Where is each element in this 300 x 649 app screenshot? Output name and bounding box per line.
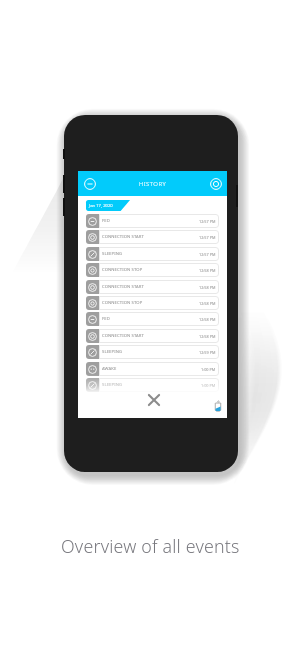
staticText: HISTORY: [139, 180, 167, 188]
button[interactable]: CONNECTION START: [86, 280, 219, 294]
staticText: 12:57 PM: [199, 219, 216, 224]
staticText: 1:00 PM: [201, 367, 216, 372]
button[interactable]: SLEEPING: [86, 378, 219, 392]
staticText: 12:58 PM: [199, 268, 216, 273]
staticText: CONNECTION START: [102, 333, 145, 339]
staticText: 12:58 PM: [199, 285, 216, 290]
staticText: FED: [102, 316, 110, 322]
button[interactable]: FED: [86, 312, 219, 326]
button[interactable]: AWAKE: [86, 362, 219, 376]
button[interactable]: Close: [143, 389, 165, 411]
staticText: Jan 17, 2020: [89, 203, 113, 209]
button[interactable]: CONNECTION STOP: [86, 296, 219, 310]
staticText: SLEEPING: [102, 251, 123, 257]
button[interactable]: FED: [86, 214, 219, 228]
staticText: SLEEPING: [102, 349, 123, 355]
staticText: 1:00 PM: [201, 383, 216, 388]
button[interactable]: Back: [82, 176, 98, 192]
staticText: CONNECTION STOP: [102, 300, 143, 306]
staticText: 12:57 PM: [199, 235, 216, 240]
staticText: FED: [102, 218, 110, 224]
button[interactable]: SLEEPING: [86, 247, 219, 261]
staticText: CONNECTION START: [102, 284, 145, 290]
staticText: CONNECTION START: [102, 234, 145, 240]
staticText: 12:58 PM: [199, 301, 216, 306]
button[interactable]: SLEEPING: [86, 345, 219, 359]
staticText: AWAKE: [102, 366, 117, 372]
staticText: 12:58 PM: [199, 334, 216, 339]
button[interactable]: CONNECTION START: [86, 329, 219, 343]
staticText: 12:57 PM: [199, 252, 216, 257]
staticText: CONNECTION STOP: [102, 267, 143, 273]
staticText: SLEEPING: [102, 382, 123, 388]
staticText: 12:59 PM: [199, 350, 216, 355]
staticText: 12:58 PM: [199, 317, 216, 322]
button[interactable]: CONNECTION STOP: [86, 263, 219, 277]
button[interactable]: Live status: [208, 176, 224, 192]
button[interactable]: Feeding bottle: [210, 398, 225, 413]
button[interactable]: CONNECTION START: [86, 230, 219, 244]
staticText: Overview of all events: [61, 534, 240, 558]
